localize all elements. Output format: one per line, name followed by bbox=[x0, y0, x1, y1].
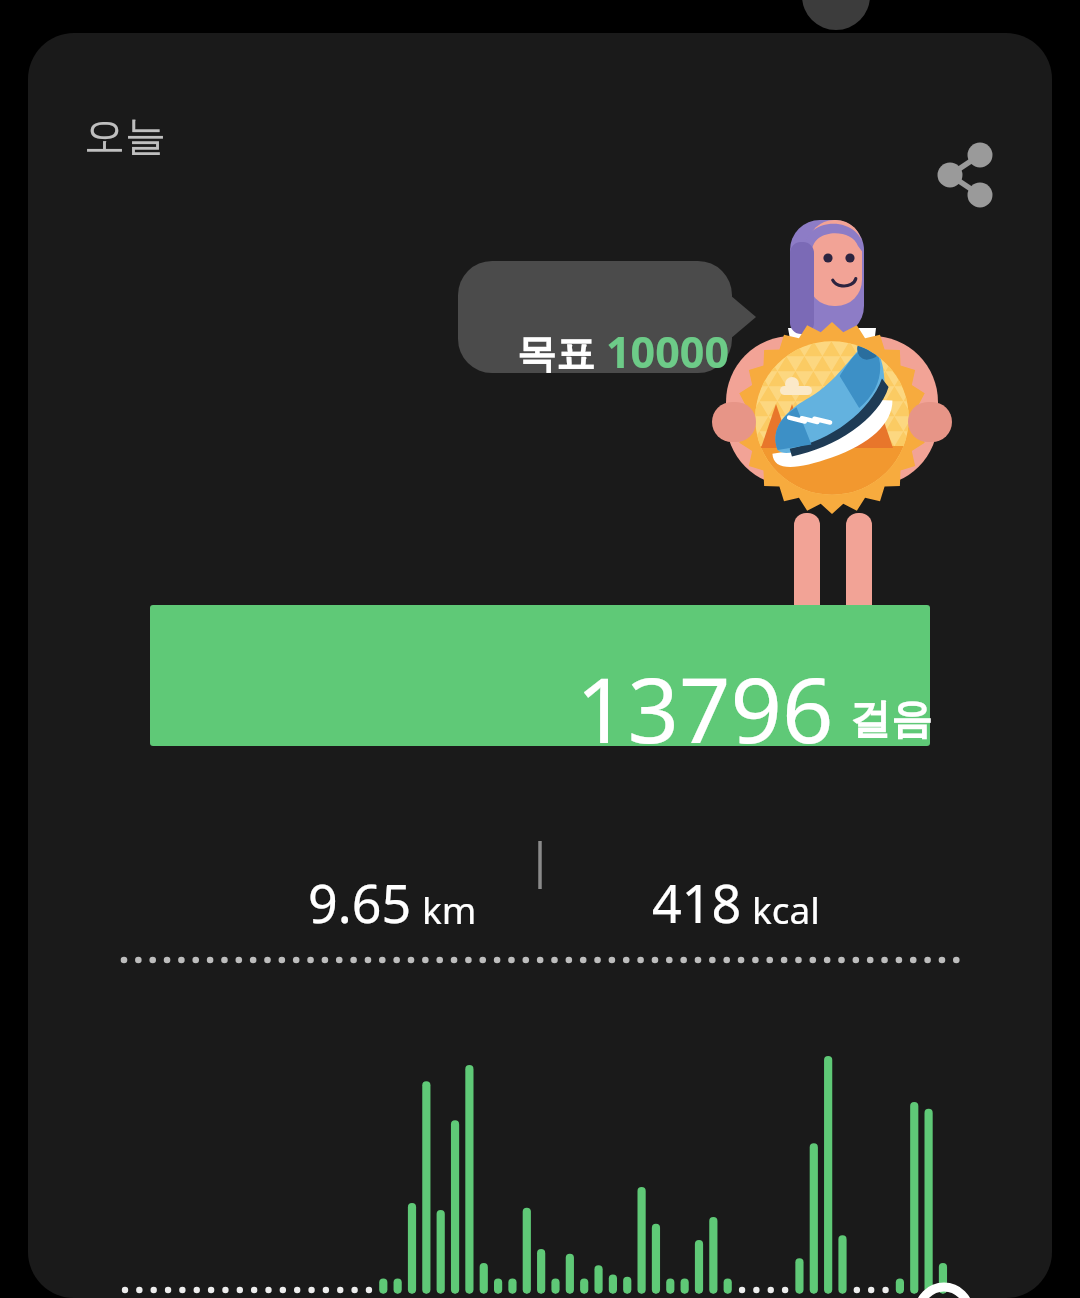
staticText: 9.65 bbox=[308, 867, 412, 938]
staticText: 목표 bbox=[517, 325, 606, 378]
staticText: 13796 bbox=[576, 647, 834, 770]
button[interactable]: 오늘 bbox=[78, 105, 172, 169]
button[interactable]: 13796 bbox=[178, 638, 958, 779]
button[interactable]: Share bbox=[906, 123, 1006, 223]
staticText: 오늘 bbox=[84, 111, 166, 163]
button[interactable]: 418 bbox=[648, 863, 824, 942]
button[interactable]: 목표 bbox=[486, 295, 760, 407]
staticText: 418 bbox=[652, 867, 742, 938]
staticText: kcal bbox=[752, 884, 820, 934]
staticText: km bbox=[422, 884, 477, 934]
staticText: 10000 bbox=[606, 322, 729, 381]
button[interactable]: 9.65 bbox=[304, 863, 481, 942]
staticText: 걸음 bbox=[850, 694, 932, 746]
